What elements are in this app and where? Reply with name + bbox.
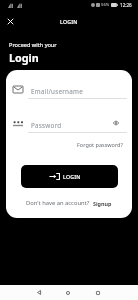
button[interactable]: Back [32,285,46,300]
button[interactable]: Password [9,114,27,132]
staticText: Password [31,121,62,130]
staticText: Email/username [31,87,83,96]
staticText: LOGIN [63,173,81,180]
staticText: 12:26 [120,2,132,8]
staticText: LOGIN [60,18,78,25]
button[interactable]: Recents [91,285,105,300]
button[interactable]: Email [9,80,27,98]
button[interactable]: Show password [107,114,125,132]
staticText: Don't have an account? [26,199,90,207]
button[interactable]: Home [61,285,75,300]
button[interactable]: Forgot password? [77,141,123,148]
button[interactable]: LOGIN [21,165,118,188]
button[interactable]: Signup [93,200,112,207]
staticText: 56% [101,2,110,8]
staticText: Proceed with your [9,41,57,49]
staticText: Login [9,50,39,65]
button[interactable]: Close [4,15,17,28]
